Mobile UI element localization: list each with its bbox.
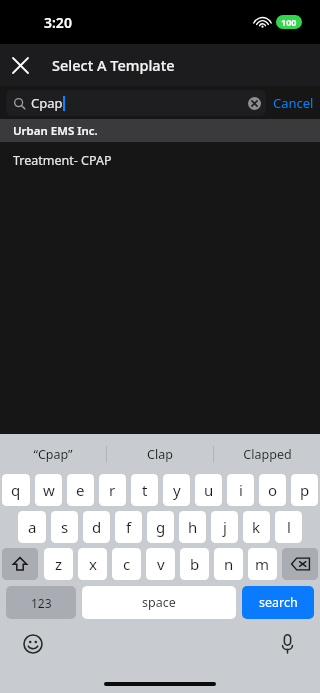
button[interactable]: Treatment- CPAP	[0, 142, 320, 179]
staticText: search	[259, 594, 298, 611]
button[interactable]: k	[243, 511, 270, 543]
button[interactable]: z	[44, 548, 73, 580]
staticText: z	[55, 554, 63, 574]
button[interactable]: w	[35, 474, 62, 506]
staticText: t	[142, 480, 148, 500]
button[interactable]: Clap	[107, 434, 213, 474]
button[interactable]: j	[211, 511, 238, 543]
staticText: space	[142, 594, 176, 611]
button[interactable]: u	[195, 474, 222, 506]
button[interactable]: d	[83, 511, 110, 543]
staticText: 123	[31, 595, 52, 611]
button[interactable]: p	[291, 474, 318, 506]
staticText: Cpap	[31, 94, 63, 112]
staticText: w	[43, 480, 55, 500]
staticText: c	[123, 554, 131, 574]
button[interactable]: l	[275, 511, 302, 543]
button[interactable]: Dictation	[274, 631, 300, 657]
button[interactable]: Shift	[2, 548, 38, 580]
button[interactable]: Close	[0, 45, 40, 85]
staticText: y	[173, 480, 181, 500]
staticText: Urban EMS Inc.	[13, 123, 98, 139]
button[interactable]: e	[67, 474, 94, 506]
button[interactable]: Cancel	[266, 86, 320, 119]
staticText: d	[92, 517, 102, 537]
button[interactable]: c	[112, 548, 141, 580]
button[interactable]: o	[259, 474, 286, 506]
staticText: v	[157, 554, 165, 574]
staticText: “Cpap”	[33, 446, 73, 463]
button[interactable]: f	[115, 511, 142, 543]
button[interactable]: v	[146, 548, 175, 580]
staticText: 3:20	[44, 13, 72, 32]
button[interactable]: b	[180, 548, 209, 580]
staticText: e	[76, 480, 85, 500]
staticText: k	[252, 517, 261, 537]
button[interactable]: s	[51, 511, 78, 543]
staticText: Select A Template	[52, 55, 175, 75]
staticText: o	[268, 480, 278, 500]
button[interactable]: n	[214, 548, 243, 580]
button[interactable]: q	[2, 474, 30, 506]
button[interactable]: r	[99, 474, 126, 506]
button[interactable]: h	[179, 511, 206, 543]
button[interactable]: Emoji	[20, 631, 46, 657]
staticText: Clapped	[243, 446, 292, 463]
staticText: q	[11, 480, 21, 500]
button[interactable]: Cpap	[6, 90, 266, 116]
staticText: h	[188, 517, 198, 537]
button[interactable]: search	[242, 586, 314, 619]
staticText: f	[126, 517, 132, 537]
staticText: r	[109, 480, 116, 500]
button[interactable]: Delete	[282, 548, 318, 580]
staticText: b	[190, 554, 200, 574]
staticText: 100	[281, 16, 297, 28]
staticText: p	[300, 480, 310, 500]
button[interactable]: g	[147, 511, 174, 543]
button[interactable]: 123	[6, 586, 76, 619]
staticText: n	[224, 554, 234, 574]
button[interactable]: x	[78, 548, 107, 580]
staticText: a	[28, 517, 37, 537]
button[interactable]: t	[131, 474, 158, 506]
staticText: g	[156, 517, 166, 537]
button[interactable]: y	[163, 474, 190, 506]
staticText: i	[239, 480, 243, 500]
staticText: m	[255, 554, 270, 574]
button[interactable]: space	[82, 586, 236, 619]
staticText: x	[89, 554, 97, 574]
button[interactable]: Clear text	[244, 93, 264, 113]
staticText: Clap	[147, 446, 173, 463]
button[interactable]: a	[18, 511, 46, 543]
button[interactable]: “Cpap”	[0, 434, 106, 474]
staticText: u	[204, 480, 214, 500]
button[interactable]: Clapped	[214, 434, 320, 474]
button[interactable]: m	[248, 548, 277, 580]
staticText: Cancel	[273, 94, 314, 112]
staticText: j	[223, 517, 227, 537]
staticText: s	[61, 517, 69, 537]
staticText: Treatment- CPAP	[13, 152, 112, 169]
staticText: l	[287, 517, 291, 537]
button[interactable]: i	[227, 474, 254, 506]
